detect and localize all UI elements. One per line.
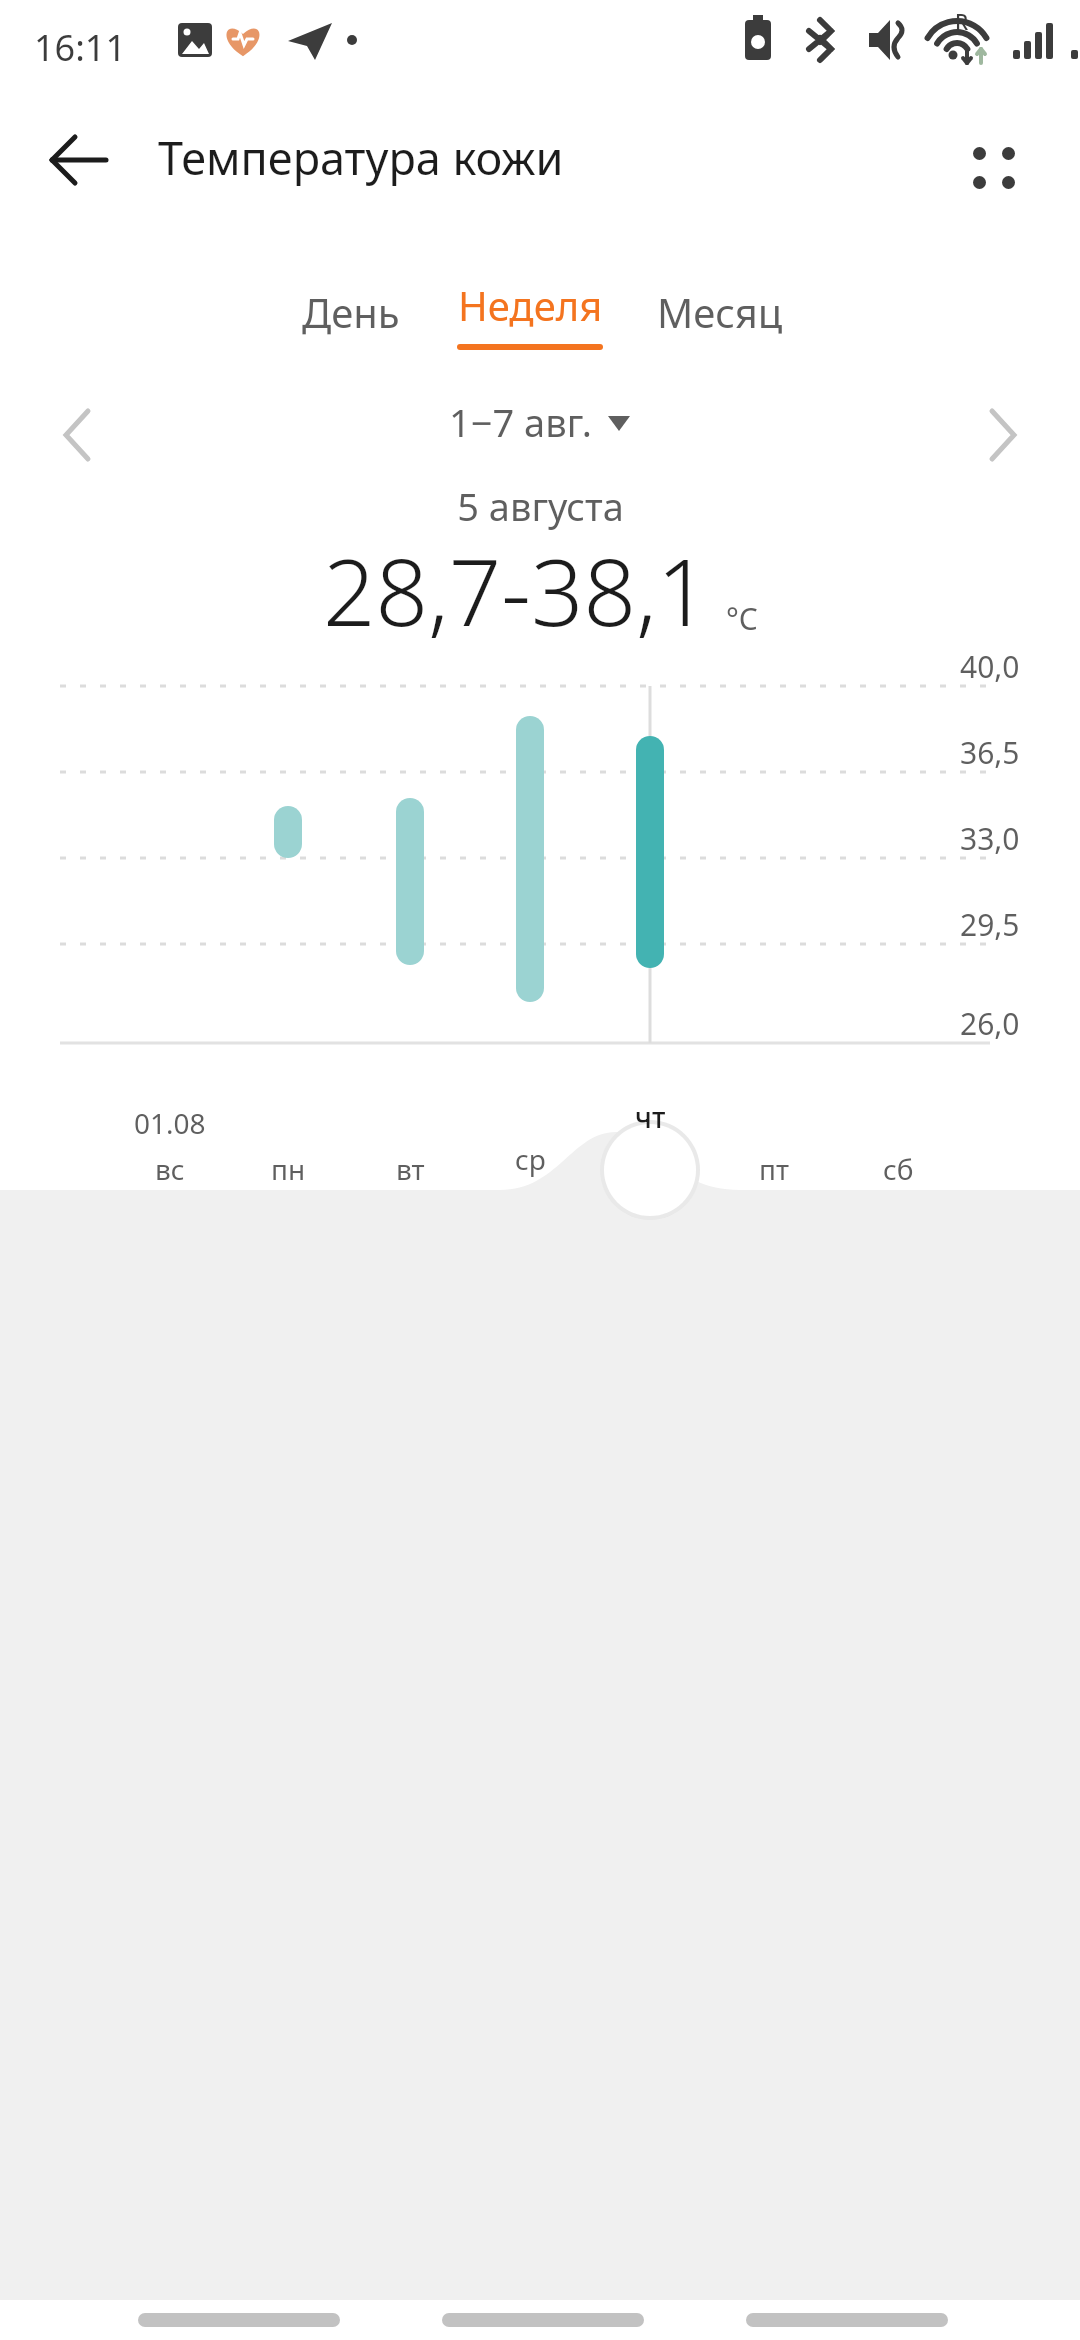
staticText: Температура кожи (158, 127, 564, 188)
staticText: Неделя (458, 278, 603, 332)
staticText: 29,5 (960, 904, 1020, 945)
button[interactable]: Ещё (948, 124, 1036, 212)
button[interactable]: Предыдущая неделя (36, 394, 118, 476)
button[interactable]: пт (724, 1142, 824, 1196)
button[interactable]: Назад (44, 124, 116, 196)
button[interactable]: ср (480, 1132, 580, 1186)
staticText: 01.08 (134, 1104, 206, 1142)
staticText: пт (759, 1150, 789, 1188)
staticText: вт (396, 1150, 425, 1188)
button[interactable]: пн (238, 1142, 338, 1196)
staticText: 1−7 авг. (449, 396, 592, 448)
button[interactable]: чт (600, 1090, 700, 1144)
button[interactable]: Следующая неделя (962, 394, 1044, 476)
button[interactable]: Назад (746, 2306, 948, 2334)
button[interactable]: 1−7 авг. (449, 396, 632, 448)
staticText: °C (726, 598, 758, 639)
button[interactable]: Последние приложения (138, 2306, 340, 2334)
staticText: 28,7-38,1 (323, 528, 710, 653)
staticText: чт (635, 1098, 666, 1136)
staticText: ср (515, 1140, 546, 1178)
staticText: 26,0 (960, 1003, 1020, 1044)
button[interactable]: Месяц (640, 272, 800, 352)
button[interactable]: вт (360, 1142, 460, 1196)
staticText: 40,0 (960, 646, 1020, 687)
staticText: R (955, 8, 969, 37)
staticText: Месяц (657, 285, 783, 339)
staticText: 36,5 (960, 732, 1020, 773)
button[interactable]: сб (848, 1142, 948, 1196)
button[interactable]: вс (120, 1142, 220, 1196)
staticText: сб (883, 1150, 914, 1188)
staticText: пн (271, 1150, 306, 1188)
button[interactable]: Неделя (440, 272, 620, 370)
button[interactable]: День (286, 272, 416, 352)
staticText: 16:11 (34, 23, 127, 72)
button[interactable]: Главный экран (442, 2306, 644, 2334)
staticText: вс (155, 1150, 185, 1188)
staticText: 33,0 (960, 818, 1020, 859)
staticText: 5 августа (457, 480, 624, 532)
staticText: День (302, 285, 400, 339)
